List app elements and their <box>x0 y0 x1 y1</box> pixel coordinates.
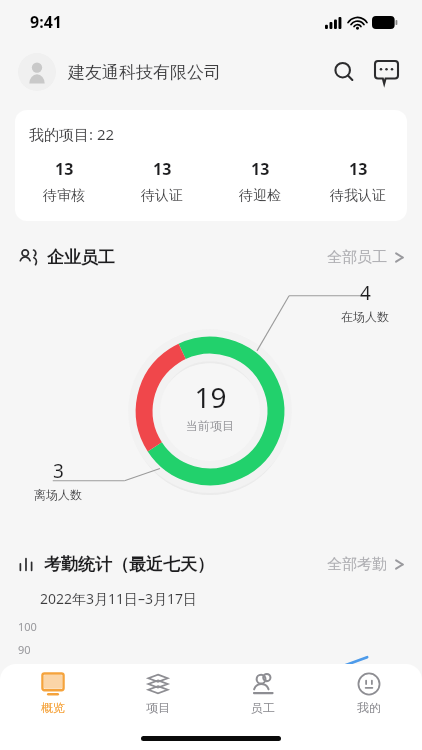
staticText: 待我认证 <box>330 187 386 205</box>
staticText: 13 <box>251 158 270 180</box>
staticText: 我的项目: 22 <box>29 124 115 144</box>
staticText: 当前项目 <box>186 418 234 433</box>
staticText: 项目 <box>146 700 170 715</box>
staticText: 待认证 <box>141 187 183 205</box>
staticText: 3 <box>53 458 64 484</box>
staticText: 13 <box>55 158 74 180</box>
staticText: 13 <box>153 158 172 180</box>
staticText: 企业员工 <box>47 247 115 268</box>
button[interactable]: Messages <box>368 54 404 90</box>
staticText: 待迎检 <box>239 187 281 205</box>
button[interactable]: 13 <box>211 158 309 205</box>
staticText: 全部考勤 <box>327 555 387 574</box>
staticText: 100 <box>18 619 37 634</box>
staticText: 员工 <box>251 700 275 715</box>
button[interactable]: 员工 <box>210 664 316 722</box>
staticText: 4 <box>360 280 371 306</box>
button[interactable]: Search <box>326 54 362 90</box>
staticText: 19 <box>194 378 227 416</box>
staticText: 9:41 <box>30 11 62 33</box>
button[interactable]: 13 <box>15 158 113 205</box>
button[interactable]: 13 <box>113 158 211 205</box>
staticText: 13 <box>349 158 368 180</box>
button[interactable]: 我的 <box>316 664 422 722</box>
staticText: 概览 <box>41 700 65 715</box>
button[interactable]: 项目 <box>105 664 210 722</box>
button[interactable]: Profile avatar <box>18 53 56 91</box>
staticText: 待审核 <box>43 187 85 205</box>
staticText: 2022年3月11日–3月17日 <box>40 589 198 608</box>
staticText: 离场人数 <box>34 487 82 502</box>
button[interactable]: 13 <box>309 158 407 205</box>
staticText: 考勤统计（最近七天） <box>44 554 214 575</box>
staticText: 全部员工 <box>327 248 387 267</box>
staticText: 我的 <box>357 700 381 715</box>
staticText: 建友通科技有限公司 <box>68 62 221 83</box>
staticText: 90 <box>18 642 31 657</box>
staticText: 在场人数 <box>341 309 389 324</box>
button[interactable]: 概览 <box>0 664 105 722</box>
button[interactable]: 全部员工 <box>327 248 404 267</box>
button[interactable]: 全部考勤 <box>327 555 404 574</box>
button[interactable]: 我的项目: 22 <box>15 110 407 221</box>
